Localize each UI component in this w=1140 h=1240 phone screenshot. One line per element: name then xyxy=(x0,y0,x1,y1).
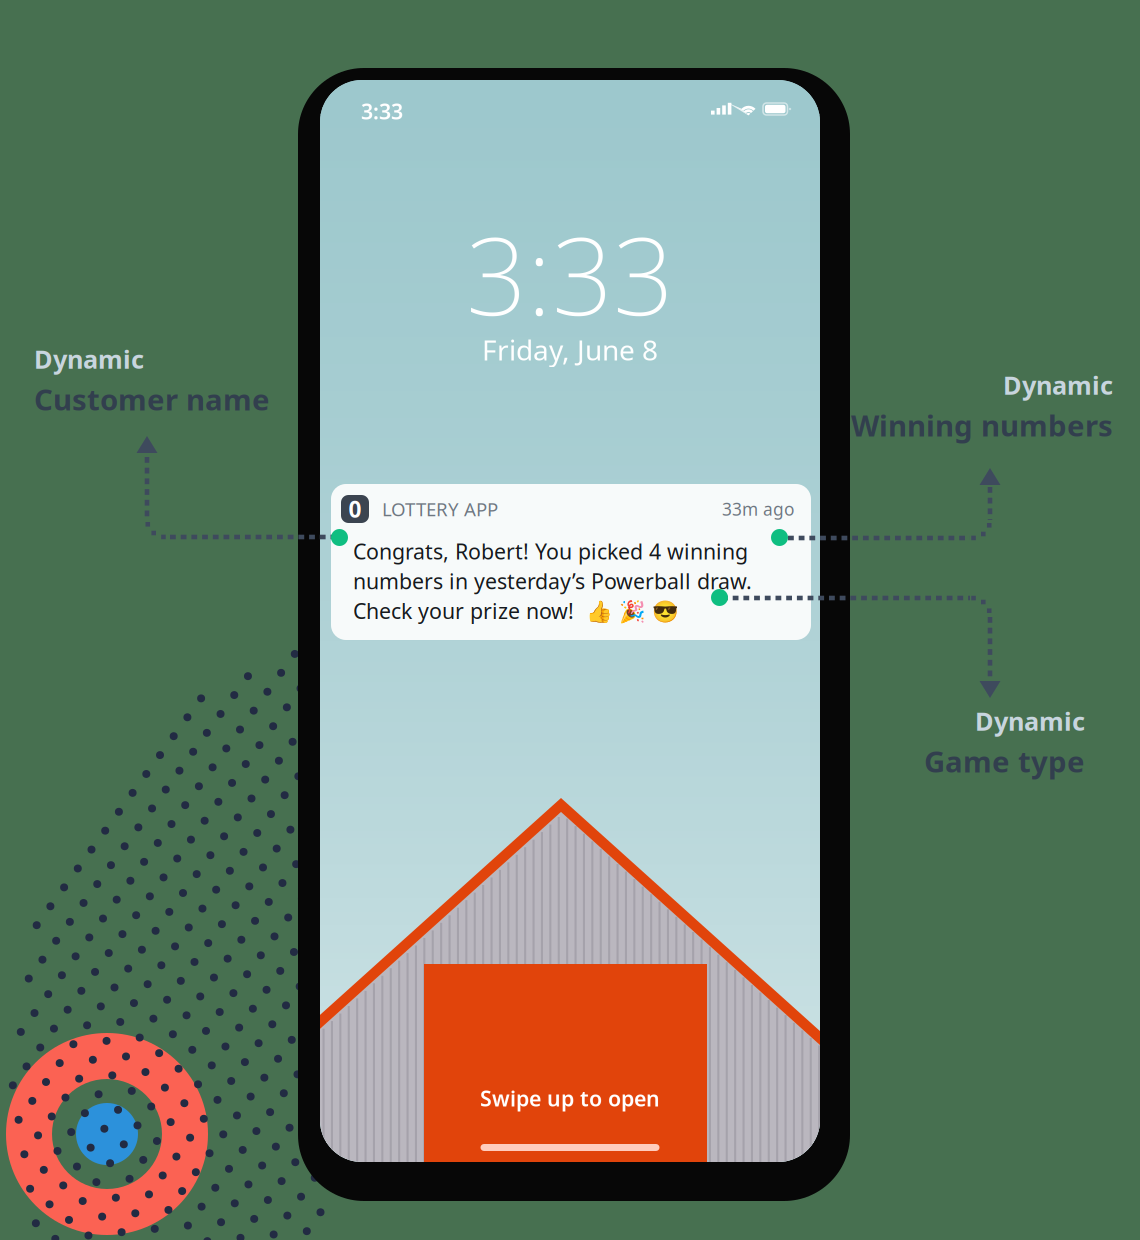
staticText: Dynamic xyxy=(1003,368,1113,402)
staticText: Winning numbers xyxy=(851,406,1113,445)
staticText: 3:33 xyxy=(466,203,674,345)
staticText: Dynamic xyxy=(34,342,144,376)
staticText: Game type xyxy=(924,742,1085,781)
staticText: 3:33 xyxy=(361,97,403,125)
staticText: Dynamic xyxy=(975,704,1085,738)
staticText: Check your prize now! 👍 🎉 😎 xyxy=(353,597,679,625)
staticText: Congrats, Robert! You picked 4 winning xyxy=(353,537,748,565)
staticText: LOTTERY APP xyxy=(382,497,498,521)
staticText: 33m ago xyxy=(722,497,794,520)
staticText: 0 xyxy=(348,494,361,524)
staticText: Customer name xyxy=(34,380,270,419)
button[interactable]: 0 xyxy=(331,484,811,640)
staticText: numbers in yesterday’s Powerball draw. xyxy=(353,567,752,595)
staticText: Friday, June 8 xyxy=(482,331,658,368)
staticText: Swipe up to open xyxy=(480,1084,660,1112)
